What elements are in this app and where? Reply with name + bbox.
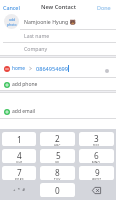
button[interactable]: add phone: [0, 78, 116, 91]
staticText: PQRS: [15, 178, 24, 180]
staticText: 9: [95, 167, 100, 178]
staticText: Namjoonie Hyung 🐻: [24, 18, 77, 25]
staticText: home: [12, 65, 26, 72]
button[interactable]: 0: [40, 183, 75, 197]
staticText: 3: [94, 133, 99, 144]
button[interactable]: 8: [40, 166, 75, 180]
staticText: 0864954699: [36, 65, 68, 73]
button[interactable]: 6: [79, 149, 114, 163]
button[interactable]: add email: [0, 105, 116, 118]
button[interactable]: Cancel: [3, 4, 20, 11]
staticText: add phone: [12, 81, 38, 88]
button[interactable]: Done: [97, 4, 111, 11]
staticText: photo: [7, 22, 17, 27]
staticText: Cancel: [3, 4, 20, 11]
staticText: 4: [17, 150, 22, 161]
staticText: WXYZ: [92, 178, 102, 180]
button[interactable]: Company: [24, 45, 48, 52]
staticText: 7: [17, 167, 22, 178]
button[interactable]: add photo: [4, 14, 19, 29]
button[interactable]: home: [0, 58, 116, 77]
staticText: GHI: [16, 161, 23, 163]
button[interactable]: 1: [2, 132, 36, 146]
staticText: add: [9, 17, 16, 22]
staticText: MNO: [92, 161, 101, 163]
staticText: Company: [24, 45, 48, 52]
staticText: 6: [94, 150, 99, 161]
button[interactable]: 3: [79, 132, 114, 146]
staticText: New Contact: [41, 3, 76, 11]
staticText: 5: [56, 150, 61, 161]
staticText: TUV: [54, 178, 61, 180]
button[interactable]: 4: [2, 149, 36, 163]
button[interactable]: 2: [40, 132, 75, 146]
staticText: Done: [97, 4, 111, 11]
staticText: ABC: [54, 144, 61, 146]
staticText: 2: [55, 133, 60, 144]
staticText: JKL: [55, 161, 61, 163]
staticText: add email: [12, 108, 36, 115]
staticText: 1: [17, 134, 22, 145]
button[interactable]: Backspace: [79, 183, 114, 197]
button[interactable]: 5: [40, 149, 75, 163]
button[interactable]: Namjoonie Hyung 🐻: [24, 18, 77, 25]
button[interactable]: Clear text: [105, 69, 109, 73]
staticText: 0: [55, 185, 60, 196]
button[interactable]: 7: [2, 166, 36, 180]
staticText: DEF: [93, 144, 100, 146]
button[interactable]: 9: [79, 166, 114, 180]
staticText: 8: [55, 167, 60, 178]
staticText: + * #: [13, 187, 26, 193]
staticText: Last name: [24, 32, 50, 39]
button[interactable]: Last name: [24, 32, 50, 39]
button[interactable]: + * #: [2, 183, 36, 197]
